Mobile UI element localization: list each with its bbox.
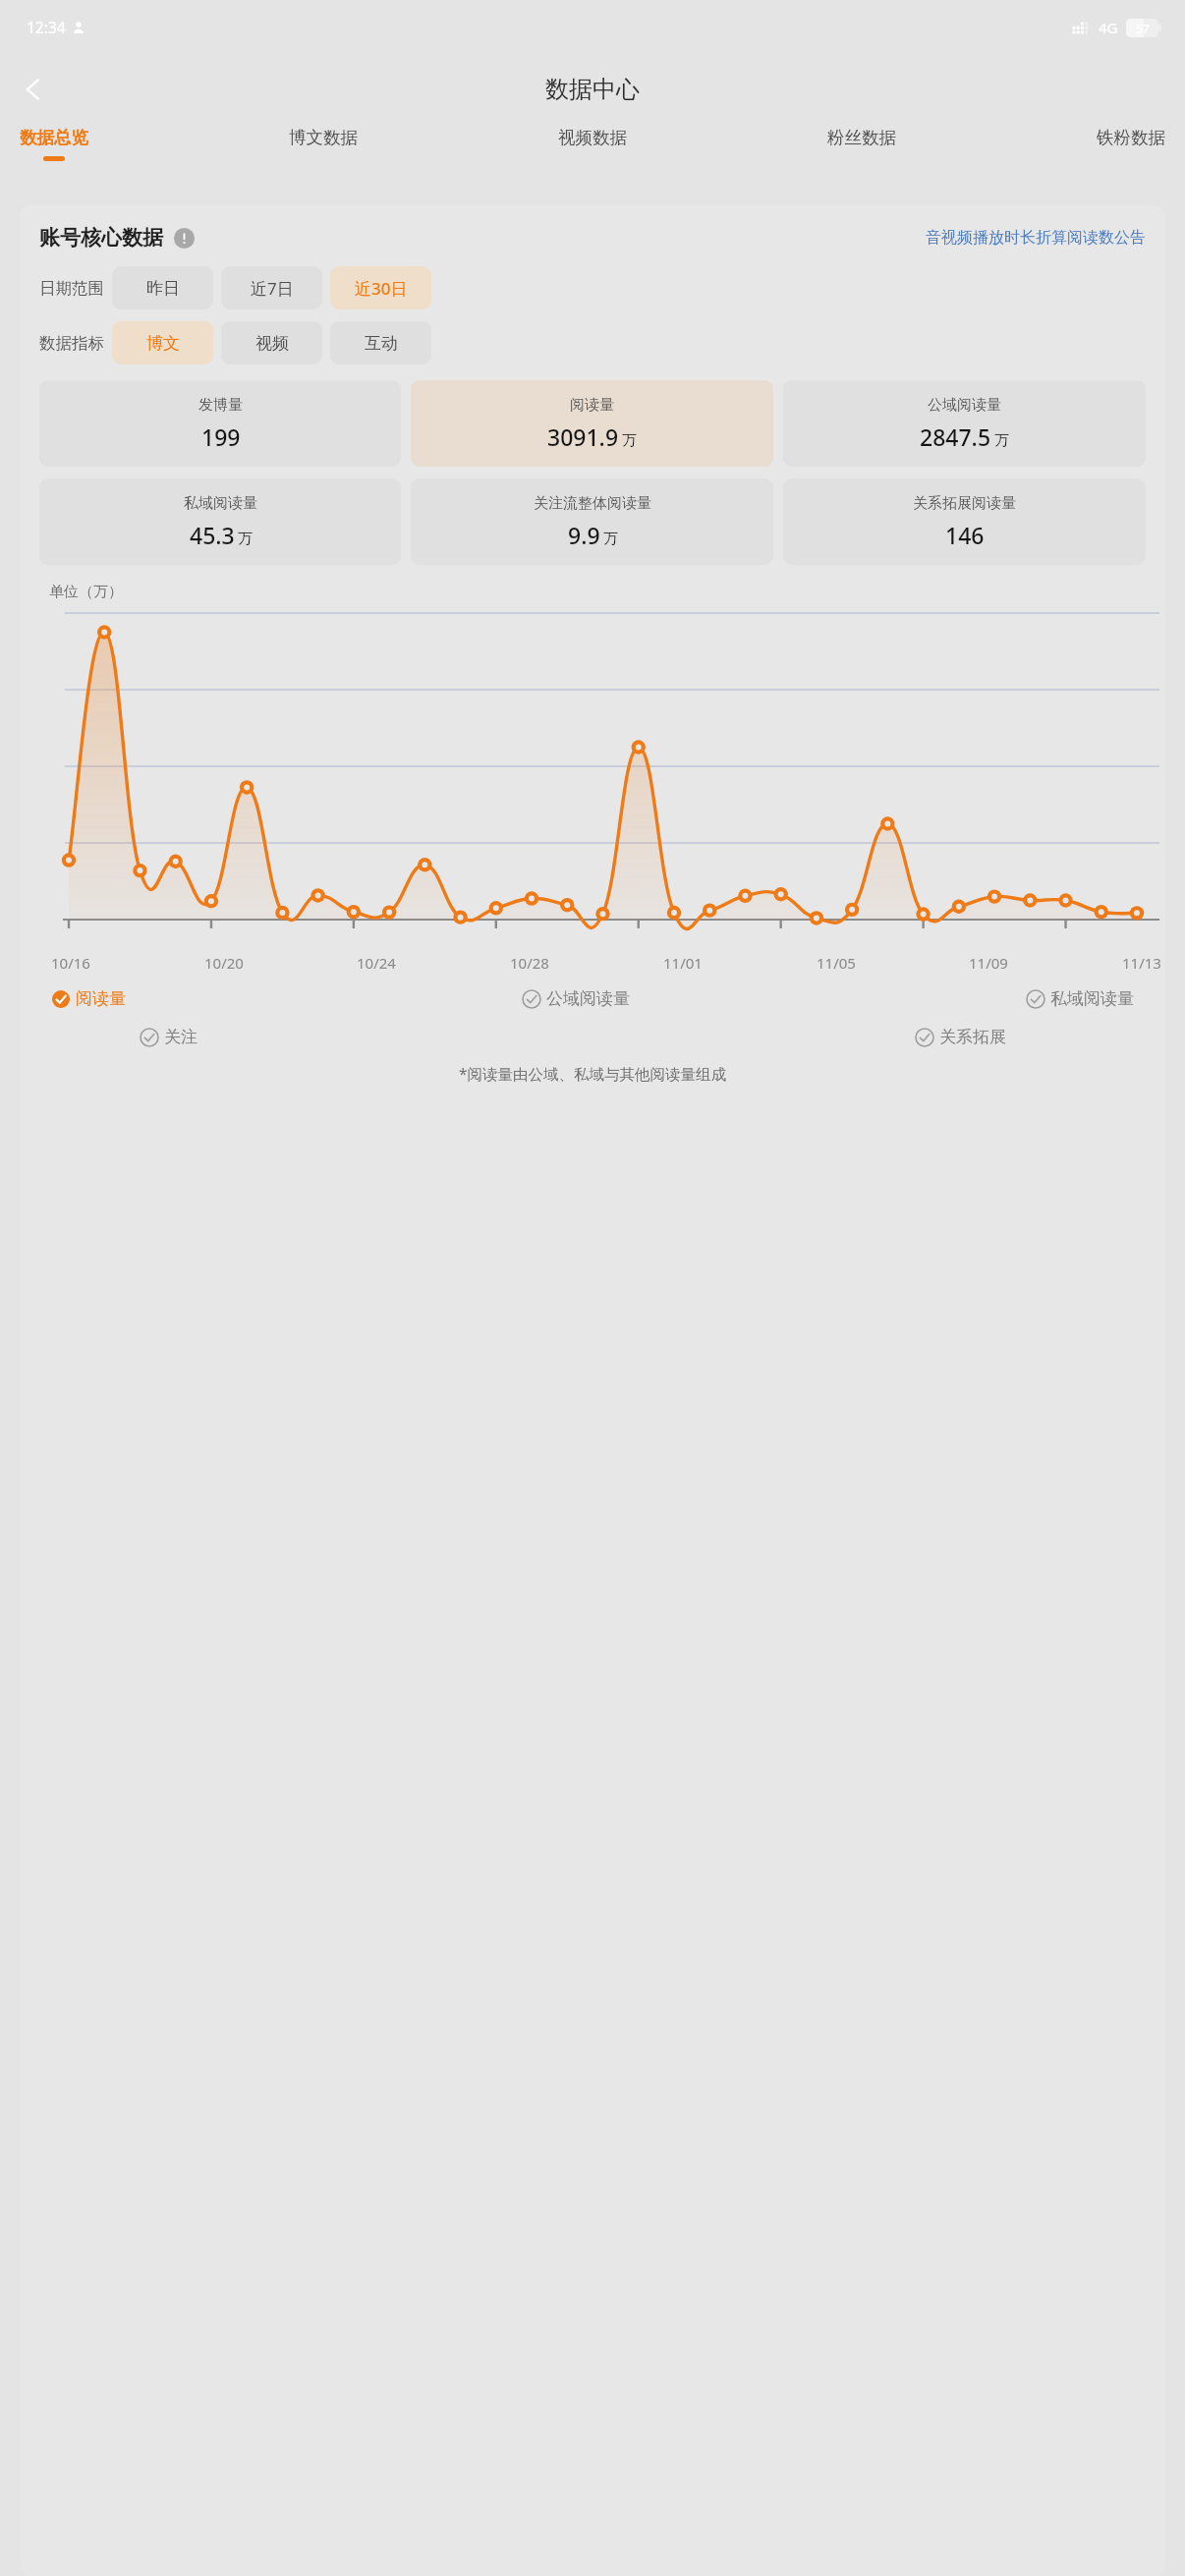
staticText: 10/16: [51, 953, 90, 973]
button[interactable]: 视频数据: [552, 125, 633, 158]
staticText: 万: [603, 530, 618, 548]
staticText: 11/01: [663, 953, 703, 973]
staticText: 公域阅读量: [928, 396, 1001, 415]
button[interactable]: 近7日: [221, 266, 322, 309]
staticText: 9.9: [568, 520, 600, 550]
staticText: 2847.5: [920, 421, 991, 452]
button[interactable]: 阅读量: [49, 986, 128, 1011]
staticText: 关系拓展阅读量: [913, 494, 1016, 513]
staticText: 铁粉数据: [1097, 127, 1165, 148]
staticText: 账号核心数据: [39, 225, 163, 251]
button[interactable]: 互动: [330, 321, 431, 364]
staticText: 57: [1136, 21, 1150, 36]
button[interactable]: 阅读量: [411, 380, 773, 467]
staticText: 146: [945, 520, 985, 550]
staticText: 昨日: [146, 278, 180, 299]
staticText: 互动: [365, 333, 398, 354]
button[interactable]: 铁粉数据: [1091, 125, 1171, 158]
staticText: 4G: [1099, 18, 1118, 37]
staticText: 11/05: [817, 953, 856, 973]
button[interactable]: 昨日: [112, 266, 213, 309]
staticText: 万: [238, 530, 253, 548]
staticText: 数据指标: [39, 333, 104, 354]
staticText: 10/28: [510, 953, 549, 973]
staticText: *阅读量由公域、私域与其他阅读量组成: [20, 1063, 1165, 1084]
button[interactable]: 发博量: [39, 380, 401, 467]
staticText: 音视频播放时长折算阅读数公告: [926, 228, 1146, 248]
staticText: 发博量: [198, 396, 243, 415]
staticText: 关注流整体阅读量: [534, 494, 651, 513]
staticText: 万: [994, 431, 1009, 450]
button[interactable]: 关注流整体阅读量: [411, 478, 773, 565]
button[interactable]: 博文: [112, 321, 213, 364]
staticText: 视频: [255, 333, 289, 354]
staticText: 私域阅读量: [184, 494, 257, 513]
button[interactable]: 私域阅读量: [1024, 986, 1136, 1011]
button[interactable]: 音视频播放时长折算阅读数公告: [926, 228, 1146, 248]
button[interactable]: 博文数据: [283, 125, 364, 158]
button[interactable]: 公域阅读量: [520, 986, 632, 1011]
staticText: 10/20: [204, 953, 244, 973]
button[interactable]: 关系拓展: [913, 1025, 1008, 1049]
staticText: 11/13: [1122, 953, 1161, 973]
staticText: 阅读量: [76, 988, 126, 1009]
button[interactable]: 粉丝数据: [821, 125, 902, 158]
button[interactable]: 视频: [221, 321, 322, 364]
staticText: 粉丝数据: [827, 127, 896, 148]
staticText: 数据总览: [20, 127, 88, 148]
staticText: 近7日: [251, 277, 294, 300]
staticText: 10/24: [357, 953, 396, 973]
button[interactable]: 近30日: [330, 266, 431, 309]
button[interactable]: 公域阅读量: [783, 380, 1146, 467]
staticText: 博文数据: [289, 127, 358, 148]
staticText: 万: [622, 431, 637, 450]
button[interactable]: Info: [171, 225, 197, 251]
staticText: 日期范围: [39, 278, 104, 299]
staticText: 45.3: [190, 520, 235, 550]
staticText: 11/09: [969, 953, 1008, 973]
staticText: 关系拓展: [939, 1027, 1006, 1047]
staticText: 3091.9: [547, 421, 619, 452]
staticText: 数据中心: [545, 75, 640, 104]
button[interactable]: 关系拓展阅读量: [783, 478, 1146, 565]
button[interactable]: Back: [6, 62, 61, 117]
button[interactable]: 关注: [138, 1025, 199, 1049]
staticText: 12:34: [27, 17, 66, 37]
staticText: 博文: [146, 333, 180, 354]
staticText: 阅读量: [570, 396, 614, 415]
staticText: 单位（万）: [49, 583, 123, 601]
staticText: 私域阅读量: [1050, 988, 1134, 1009]
staticText: 公域阅读量: [546, 988, 630, 1009]
staticText: 199: [201, 421, 241, 452]
staticText: 关注: [164, 1027, 197, 1047]
button[interactable]: 数据总览: [14, 125, 94, 163]
staticText: 近30日: [355, 277, 408, 300]
staticText: 视频数据: [558, 127, 627, 148]
button[interactable]: 私域阅读量: [39, 478, 401, 565]
